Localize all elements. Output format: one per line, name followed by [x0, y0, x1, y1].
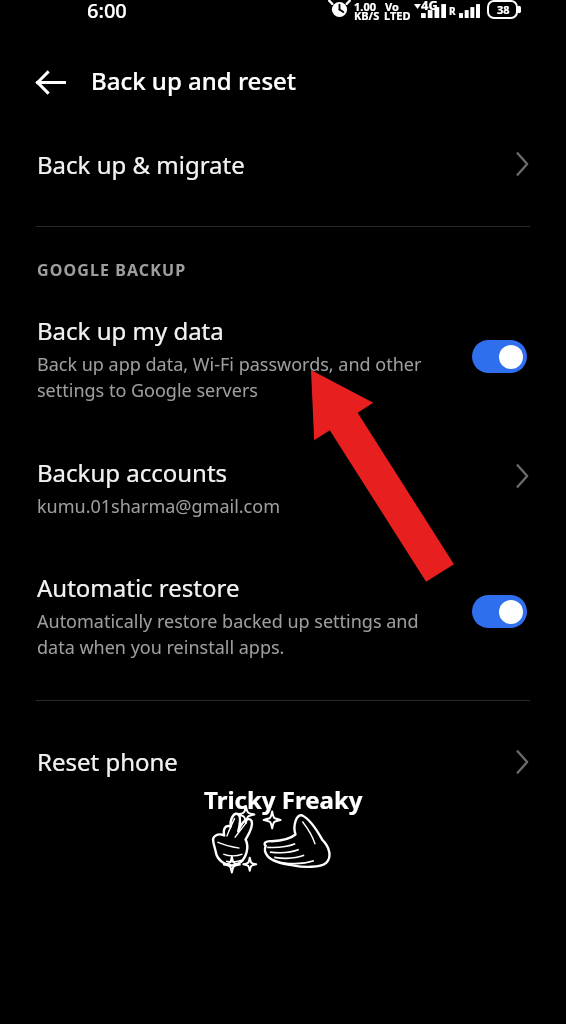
- staticText: Tricky Freaky: [204, 783, 363, 816]
- button[interactable]: Back: [29, 66, 72, 98]
- staticText: 6:00: [87, 0, 127, 24]
- staticText: Back up & migrate: [37, 148, 245, 181]
- staticText: 1.00: [354, 0, 376, 14]
- staticText: 38: [497, 2, 510, 17]
- button[interactable]: Toggle on: [472, 340, 527, 373]
- button[interactable]: Backup accounts: [0, 442, 566, 532]
- staticText: LTED: [384, 8, 411, 23]
- button[interactable]: Toggle on: [472, 595, 527, 628]
- staticText: Backup accounts: [37, 456, 228, 489]
- staticText: Automatic restore: [37, 571, 240, 604]
- staticText: Reset phone: [37, 745, 178, 778]
- staticText: Automatically restore backed up settings…: [37, 609, 419, 660]
- staticText: GOOGLE BACKUP: [37, 259, 187, 281]
- staticText: kumu.01sharma@gmail.com: [37, 494, 280, 519]
- button[interactable]: Back up & migrate: [0, 130, 566, 198]
- staticText: KB/S: [354, 8, 380, 23]
- button[interactable]: Back up my data: [0, 300, 566, 418]
- button[interactable]: Reset phone: [0, 728, 566, 796]
- staticText: Back up and reset: [91, 64, 297, 97]
- button[interactable]: Automatic restore: [0, 557, 566, 675]
- staticText: Back up my data: [37, 314, 224, 347]
- staticText: 4G: [421, 0, 438, 14]
- staticText: R: [449, 4, 456, 18]
- staticText: Back up app data, Wi-Fi passwords, and o…: [37, 352, 422, 403]
- staticText: Vo: [385, 0, 399, 14]
